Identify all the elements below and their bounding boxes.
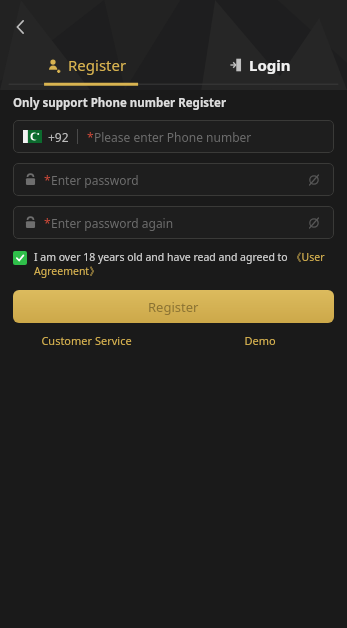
button[interactable]: Register — [13, 290, 334, 323]
button[interactable]: 《User — [291, 250, 325, 264]
staticText: Enter password again — [51, 215, 174, 231]
staticText: +92 — [48, 129, 69, 145]
button[interactable]: Customer Service — [0, 333, 173, 348]
button[interactable]: I am over 18 years old and have read and… — [13, 250, 334, 278]
button[interactable]: * — [13, 206, 334, 239]
staticText: Register — [148, 298, 199, 316]
staticText: * — [44, 172, 51, 188]
button[interactable]: Login — [173, 48, 347, 82]
button[interactable]: Demo — [173, 333, 347, 348]
button[interactable]: Agreement》 — [34, 264, 100, 278]
staticText: Enter password — [51, 172, 139, 188]
staticText: I am over 18 years old and have read and… — [34, 250, 291, 264]
staticText: Register — [68, 55, 127, 75]
button[interactable]: Register — [0, 48, 173, 82]
staticText: * — [87, 129, 94, 145]
button[interactable]: * — [13, 163, 334, 196]
button[interactable]: Back — [4, 10, 38, 44]
staticText: Login — [249, 55, 291, 75]
staticText: Only support Phone number Register — [13, 95, 227, 111]
button[interactable]: Toggle password visibility — [300, 209, 328, 237]
staticText: Demo — [244, 333, 276, 348]
button[interactable]: +92 — [13, 120, 334, 153]
staticText: * — [44, 215, 51, 231]
button[interactable]: Toggle password visibility — [300, 166, 328, 194]
staticText: Customer Service — [41, 333, 132, 348]
staticText: Please enter Phone number — [94, 129, 252, 145]
